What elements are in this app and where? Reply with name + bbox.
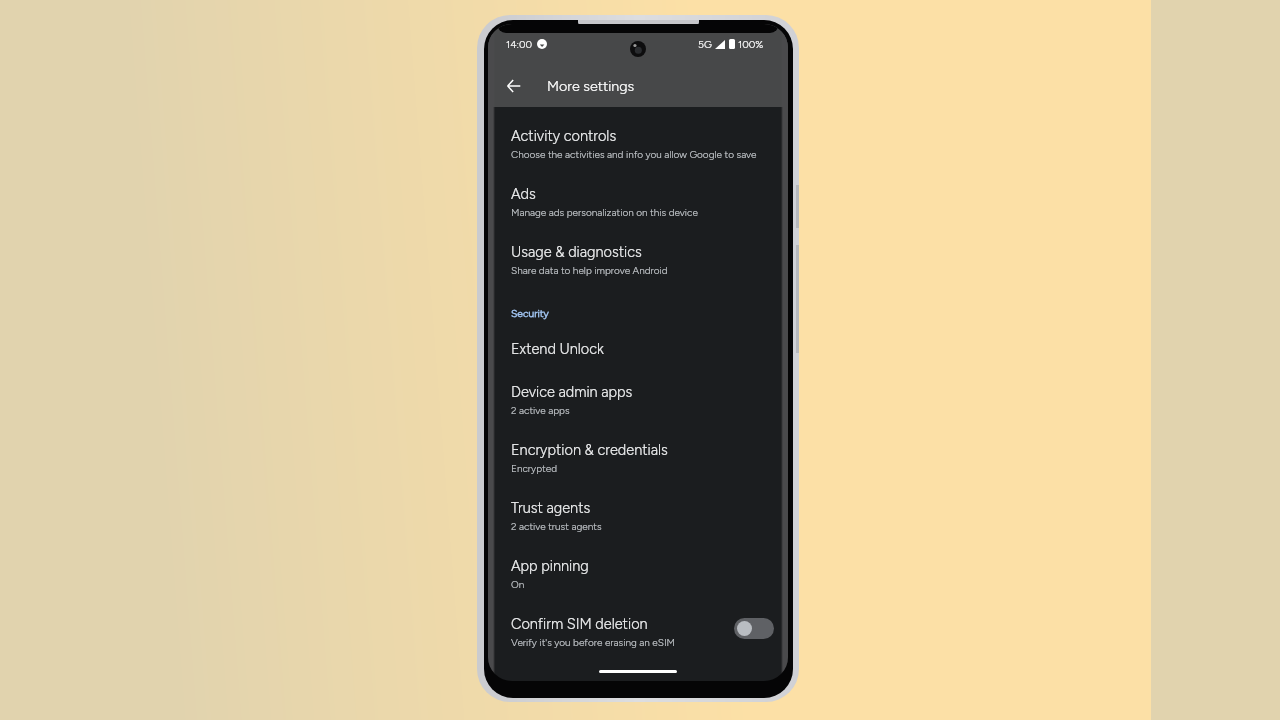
button[interactable]: Encryption & credentials [488, 428, 788, 486]
staticText: Activity controls [511, 127, 617, 144]
staticText: Verify it's you before erasing an eSIM [511, 636, 675, 648]
button[interactable]: App pinning [488, 544, 788, 602]
button[interactable]: Confirm SIM deletion [488, 602, 788, 660]
button[interactable]: Ads [488, 172, 788, 230]
button[interactable]: Usage & diagnostics [488, 230, 788, 288]
staticText: Manage ads personalization on this devic… [511, 206, 698, 218]
staticText: Device admin apps [511, 383, 633, 400]
staticText: 2 active trust agents [511, 520, 602, 532]
staticText: Choose the activities and info you allow… [511, 148, 757, 160]
button[interactable]: Confirm SIM deletion [734, 618, 774, 639]
staticText: Ads [511, 185, 536, 202]
staticText: Encryption & credentials [511, 441, 668, 458]
button[interactable]: Back [498, 70, 530, 102]
staticText: 100% [738, 38, 764, 50]
staticText: 2 active apps [511, 404, 570, 416]
staticText: Share data to help improve Android [511, 264, 668, 276]
staticText: Usage & diagnostics [511, 243, 642, 260]
staticText: Confirm SIM deletion [511, 615, 648, 632]
staticText: 14:00 [506, 38, 533, 50]
staticText: Trust agents [511, 499, 591, 516]
button[interactable]: Activity controls [488, 114, 788, 172]
button[interactable]: Extend Unlock [488, 327, 788, 370]
staticText: Encrypted [511, 462, 557, 474]
staticText: Security [511, 307, 549, 319]
staticText: On [511, 578, 525, 590]
staticText: Extend Unlock [511, 340, 604, 357]
staticText: More settings [547, 77, 635, 94]
staticText: 5G [698, 38, 712, 50]
staticText: App pinning [511, 557, 589, 574]
button[interactable]: Trust agents [488, 486, 788, 544]
button[interactable]: Device admin apps [488, 370, 788, 428]
